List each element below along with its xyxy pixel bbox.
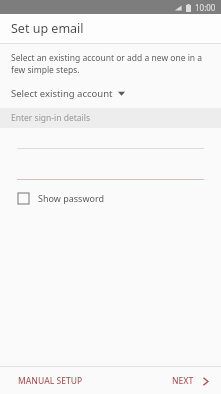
staticText: 10:00 — [195, 2, 216, 13]
staticText: Enter sign-in details — [11, 112, 91, 124]
button[interactable]: Select existing account — [0, 85, 221, 104]
button[interactable]: Show password — [0, 189, 118, 207]
button[interactable] — [0, 128, 221, 149]
button[interactable]: MANUAL SETUP — [0, 370, 93, 392]
button[interactable] — [0, 149, 221, 180]
staticText: NEXT — [172, 375, 194, 387]
staticText: Select an existing account or add a new … — [11, 52, 207, 76]
button[interactable]: NEXT — [162, 370, 221, 392]
staticText: Show password — [38, 192, 104, 204]
staticText: MANUAL SETUP — [18, 375, 83, 387]
staticText: Select existing account — [11, 87, 113, 100]
staticText: Set up email — [11, 20, 84, 37]
other: Next — [202, 377, 209, 386]
